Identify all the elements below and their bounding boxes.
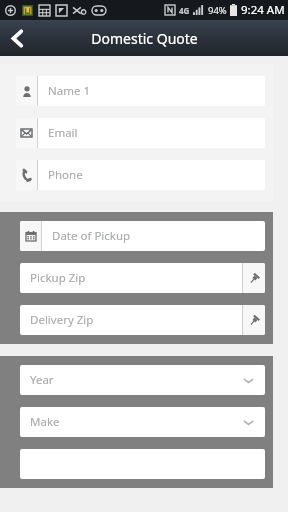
staticText: 94%	[208, 4, 227, 17]
button[interactable]: Use current location	[243, 305, 265, 335]
staticText: Delivery Zip	[30, 312, 94, 328]
staticText: Year	[30, 372, 54, 388]
staticText: 4G	[179, 5, 190, 16]
button[interactable]: Use current location	[243, 263, 265, 293]
button[interactable]: Year	[20, 365, 265, 395]
button[interactable]: Pickup Zip	[20, 263, 265, 293]
staticText: Pickup Zip	[30, 270, 86, 286]
staticText: Email	[48, 125, 78, 141]
button[interactable]: Date of Pickup	[20, 221, 265, 251]
staticText: Phone	[48, 167, 83, 183]
staticText: Name 1	[48, 83, 90, 99]
button[interactable]: Make	[20, 407, 265, 437]
staticText: Domestic Quote	[91, 29, 198, 48]
button[interactable]: Name 1	[16, 76, 265, 106]
button[interactable]: Email	[16, 118, 265, 148]
staticText: Date of Pickup	[52, 228, 131, 244]
button[interactable]: Back	[0, 20, 34, 56]
button[interactable]: Phone	[16, 160, 265, 190]
staticText: 9:24 AM	[241, 2, 285, 18]
button[interactable]: Delivery Zip	[20, 305, 265, 335]
staticText: Make	[30, 414, 60, 430]
